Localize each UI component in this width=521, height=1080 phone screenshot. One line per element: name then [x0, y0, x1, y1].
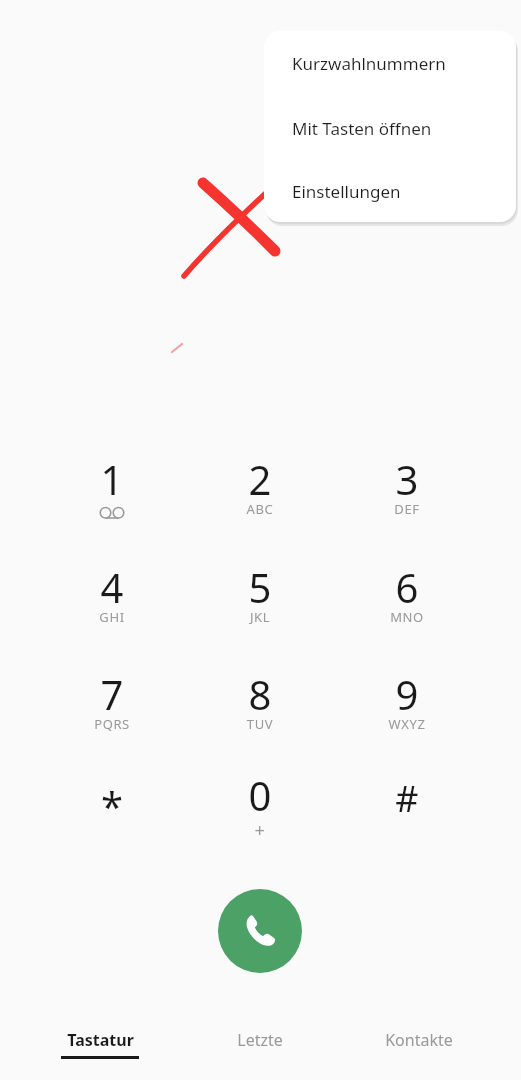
staticText: ABC — [205, 500, 315, 518]
staticText: Tastatur — [67, 1029, 134, 1051]
button[interactable]: 0 — [205, 756, 315, 848]
staticText: + — [205, 818, 315, 843]
staticText: 8 — [205, 667, 315, 721]
staticText: TUV — [205, 715, 315, 733]
staticText: 0 — [205, 768, 315, 822]
staticText: MNO — [352, 608, 462, 626]
staticText: # — [352, 774, 462, 823]
button[interactable]: # — [352, 756, 462, 848]
button[interactable]: 3 — [352, 440, 462, 532]
staticText: * — [57, 778, 167, 832]
staticText: 3 — [352, 452, 462, 506]
staticText: Einstellungen — [292, 180, 401, 203]
button[interactable]: 1 — [57, 440, 167, 532]
button[interactable]: 5 — [205, 548, 315, 640]
staticText: Kurzwahlnummern — [292, 52, 446, 75]
button[interactable]: Einstellungen — [264, 160, 516, 222]
button[interactable]: 6 — [352, 548, 462, 640]
button[interactable]: 7 — [57, 655, 167, 747]
staticText: PQRS — [57, 715, 167, 733]
staticText: JKL — [205, 608, 315, 626]
button[interactable]: Kontakte — [347, 1012, 491, 1074]
staticText: GHI — [57, 608, 167, 626]
button[interactable]: Kurzwahlnummern — [264, 31, 516, 96]
button[interactable]: Mit Tasten öffnen — [264, 96, 516, 160]
staticText: 2 — [205, 452, 315, 506]
staticText: 9 — [352, 667, 462, 721]
button[interactable]: Letzte — [188, 1012, 332, 1074]
staticText: Mit Tasten öffnen — [292, 117, 432, 140]
staticText: DEF — [352, 500, 462, 518]
button[interactable]: 8 — [205, 655, 315, 747]
staticText: Kontakte — [385, 1029, 453, 1051]
staticText: WXYZ — [352, 715, 462, 733]
button[interactable]: * — [57, 756, 167, 848]
staticText: 4 — [57, 560, 167, 614]
staticText: 1 — [57, 452, 167, 506]
staticText: 6 — [352, 560, 462, 614]
button[interactable]: 9 — [352, 655, 462, 747]
button[interactable]: Tastatur — [28, 1012, 172, 1074]
button[interactable]: 2 — [205, 440, 315, 532]
button[interactable]: Anrufen — [218, 889, 302, 973]
staticText: 7 — [57, 667, 167, 721]
staticText: Letzte — [237, 1029, 283, 1051]
button[interactable]: 4 — [57, 548, 167, 640]
staticText: 5 — [205, 560, 315, 614]
